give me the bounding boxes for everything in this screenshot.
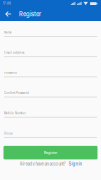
button[interactable]: Group <box>4 118 97 138</box>
staticText: Group <box>4 132 13 135</box>
staticText: Already have an account? <box>19 161 65 166</box>
button[interactable]: Email address <box>4 37 97 57</box>
button[interactable]: Mobile Number <box>4 97 97 118</box>
staticText: Register <box>44 151 57 155</box>
button[interactable]: Password <box>4 57 97 77</box>
staticText: Register <box>19 10 41 18</box>
button[interactable]: Name <box>4 21 97 37</box>
staticText: Password <box>4 71 17 74</box>
staticText: Name <box>4 31 12 34</box>
button[interactable]: Register <box>3 146 97 159</box>
staticText: 17:06 <box>3 2 11 5</box>
staticText: Mobile Number <box>4 112 26 115</box>
staticText: Email address <box>4 51 24 54</box>
button[interactable]: Confirm Password <box>4 77 97 97</box>
button[interactable]: Already have an account? <box>0 159 101 168</box>
staticText: Sign in <box>68 161 81 166</box>
button[interactable]: Back <box>0 7 19 21</box>
staticText: Confirm Password <box>4 91 29 95</box>
